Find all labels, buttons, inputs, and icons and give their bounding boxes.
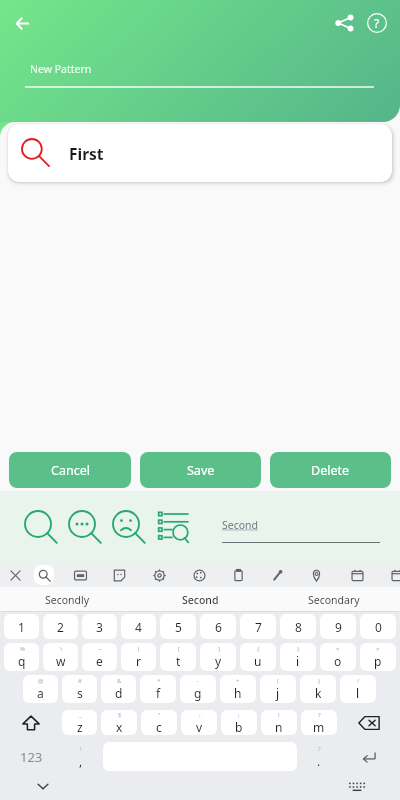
button[interactable]: ? xyxy=(301,742,337,771)
button[interactable]: 9 xyxy=(320,614,356,639)
button[interactable]: \ xyxy=(43,643,78,671)
button[interactable]: / xyxy=(340,675,376,703)
button[interactable]: ; xyxy=(221,710,257,735)
staticText: $ xyxy=(118,711,122,719)
button[interactable]: 7 xyxy=(240,614,276,639)
button[interactable]: Share xyxy=(324,3,364,43)
button[interactable]: ? xyxy=(301,710,337,735)
staticText: g xyxy=(194,685,202,701)
staticText: [ xyxy=(178,645,180,653)
button[interactable]: Enter xyxy=(339,741,398,772)
button[interactable]: { xyxy=(240,643,276,671)
button[interactable]: Save xyxy=(140,452,261,488)
staticText: } xyxy=(297,645,300,653)
button[interactable]: : xyxy=(181,710,217,735)
button[interactable]: Back xyxy=(2,3,42,43)
button[interactable]: [ xyxy=(160,643,196,671)
staticText: 7 xyxy=(255,619,262,635)
button[interactable]: ( xyxy=(260,675,296,703)
staticText: b xyxy=(235,719,243,735)
staticText: w xyxy=(56,653,66,669)
button[interactable]: + xyxy=(220,675,256,703)
staticText: n xyxy=(275,719,283,735)
button[interactable]: ] xyxy=(200,643,236,671)
button[interactable]: ) xyxy=(300,675,336,703)
button[interactable]: * xyxy=(140,675,176,703)
staticText: ! xyxy=(80,745,82,753)
button[interactable]: Stickers xyxy=(106,563,132,587)
button[interactable]: $ xyxy=(101,710,137,735)
button[interactable]: Location xyxy=(303,563,329,587)
staticText: 8 xyxy=(295,619,302,635)
button[interactable]: Clipboard xyxy=(225,563,251,587)
button[interactable]: 5 xyxy=(160,614,196,639)
staticText: Cancel xyxy=(51,462,90,479)
button[interactable]: } xyxy=(280,643,316,671)
button[interactable]: Hide keyboard xyxy=(28,772,58,800)
button[interactable]: Keyboard xyxy=(342,772,372,800)
button[interactable]: GIF xyxy=(67,563,93,587)
staticText: d xyxy=(115,685,123,701)
button[interactable]: 1 xyxy=(4,614,39,639)
button[interactable]: 3 xyxy=(82,614,117,639)
button[interactable]: Search xyxy=(18,502,62,550)
staticText: t xyxy=(176,653,181,669)
staticText: 1 xyxy=(18,619,25,635)
button[interactable]: Secondly xyxy=(0,587,134,612)
button[interactable]: @ xyxy=(23,675,58,703)
button[interactable]: Search xyxy=(34,565,54,585)
button[interactable]: Search in list xyxy=(150,502,206,550)
staticText: h xyxy=(234,685,242,701)
staticText: 9 xyxy=(335,619,342,635)
button[interactable]: 8 xyxy=(280,614,316,639)
staticText: k xyxy=(315,685,322,701)
button[interactable]: ~ xyxy=(82,643,117,671)
button[interactable]: _ xyxy=(62,710,97,735)
button[interactable]: < xyxy=(320,643,356,671)
button[interactable]: Backspace xyxy=(339,709,398,736)
button[interactable]: Delete xyxy=(270,452,391,488)
button[interactable]: ! xyxy=(63,742,99,771)
button[interactable]: 6 xyxy=(200,614,236,639)
button[interactable]: Themes xyxy=(186,563,212,587)
button[interactable]: Close xyxy=(2,563,28,587)
staticText: q xyxy=(18,653,26,669)
staticText: f xyxy=(156,685,161,701)
button[interactable]: Help xyxy=(357,3,397,43)
button[interactable]: 2 xyxy=(43,614,78,639)
button[interactable]: Voice typing xyxy=(264,563,290,587)
button[interactable]: Secondary xyxy=(267,587,400,612)
button[interactable]: > xyxy=(360,643,396,671)
button[interactable]: Cancel xyxy=(9,452,131,488)
button[interactable]: | xyxy=(121,643,156,671)
button[interactable]: More xyxy=(384,563,400,587)
button[interactable]: % xyxy=(4,643,39,671)
button[interactable]: No results xyxy=(106,502,150,550)
button[interactable]: First xyxy=(8,124,392,182)
button[interactable]: Settings xyxy=(146,563,172,587)
button[interactable]: 0 xyxy=(360,614,396,639)
button[interactable]: Symbols xyxy=(2,741,61,772)
button[interactable]: Second xyxy=(134,587,267,612)
button[interactable]: ! xyxy=(261,710,297,735)
staticText: ? xyxy=(318,745,321,753)
staticText: l xyxy=(356,685,360,701)
staticText: 0 xyxy=(375,619,382,635)
staticText: r xyxy=(136,653,141,669)
button[interactable]: " xyxy=(141,710,177,735)
staticText: e xyxy=(96,653,103,669)
button[interactable]: Calendar xyxy=(344,563,370,587)
button[interactable]: - xyxy=(180,675,216,703)
staticText: + xyxy=(236,677,240,685)
button[interactable]: 4 xyxy=(121,614,156,639)
button[interactable]: Search suggestions xyxy=(62,502,106,550)
staticText: Secondary xyxy=(308,593,360,607)
staticText: , xyxy=(79,753,83,769)
button[interactable]: # xyxy=(62,675,97,703)
button[interactable]: & xyxy=(101,675,136,703)
staticText: _ xyxy=(79,711,82,719)
staticText: \ xyxy=(60,645,63,653)
staticText: . xyxy=(317,753,321,769)
button[interactable]: Shift xyxy=(2,709,60,736)
